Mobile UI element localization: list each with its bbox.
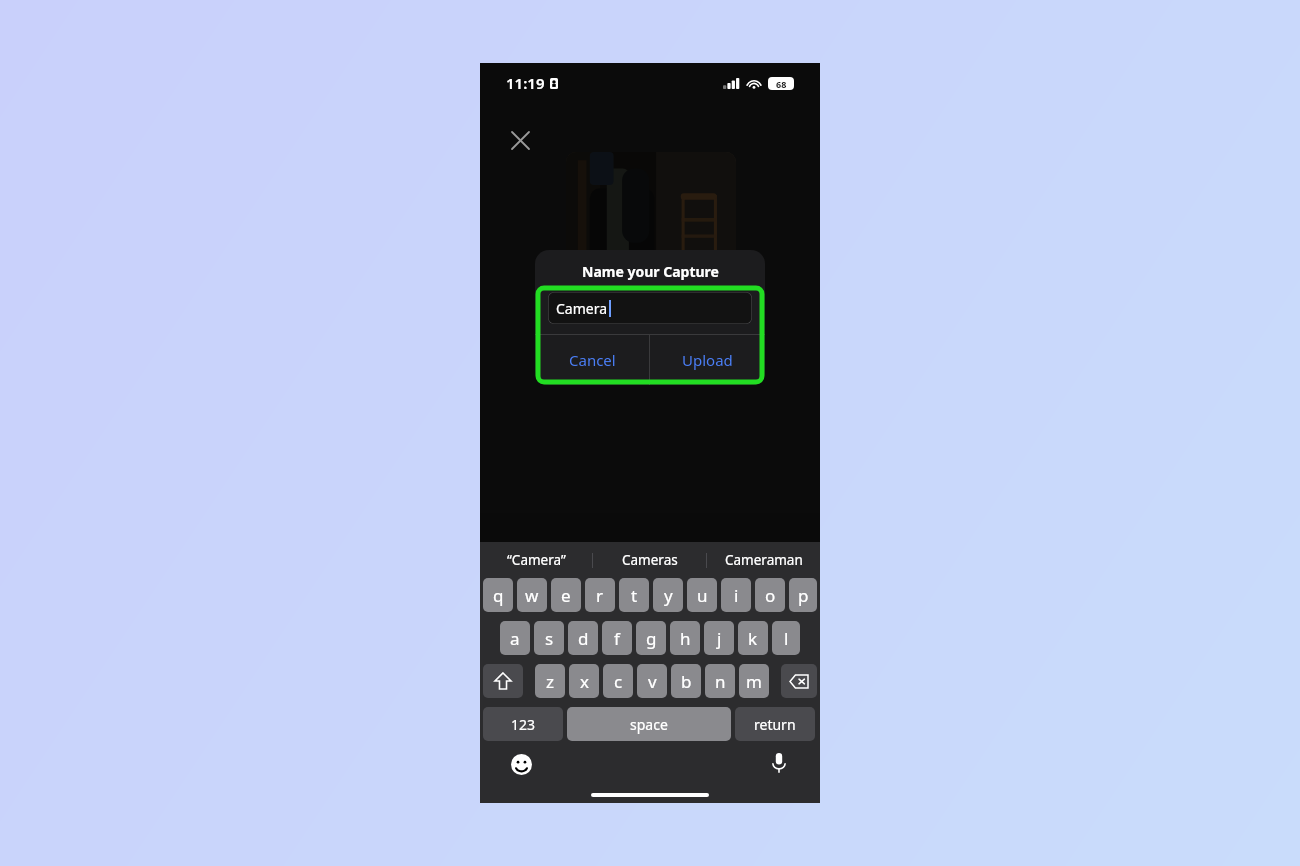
- button[interactable]: x: [569, 664, 599, 698]
- button[interactable]: Dictate: [764, 749, 794, 779]
- button[interactable]: Cameraman: [707, 542, 820, 578]
- button[interactable]: d: [568, 621, 598, 655]
- button[interactable]: Close: [500, 120, 540, 160]
- staticText: 123: [511, 715, 536, 734]
- staticText: l: [784, 627, 789, 650]
- staticText: f: [614, 627, 620, 650]
- staticText: p: [798, 584, 809, 607]
- button[interactable]: m: [739, 664, 769, 698]
- button[interactable]: Shift: [483, 664, 523, 698]
- button[interactable]: Upload: [650, 335, 765, 385]
- button[interactable]: Emoji: [506, 749, 536, 779]
- staticText: c: [614, 670, 623, 693]
- button[interactable]: e: [551, 578, 581, 612]
- staticText: w: [525, 584, 539, 607]
- staticText: Camera: [556, 299, 608, 318]
- staticText: 68: [776, 78, 787, 90]
- staticText: i: [734, 584, 739, 607]
- staticText: r: [596, 584, 604, 607]
- button[interactable]: t: [619, 578, 649, 612]
- button[interactable]: l: [772, 621, 800, 655]
- staticText: z: [546, 670, 554, 693]
- staticText: space: [630, 715, 668, 734]
- button[interactable]: g: [636, 621, 666, 655]
- staticText: h: [680, 627, 691, 650]
- button[interactable]: “Camera”: [480, 542, 592, 578]
- button[interactable]: o: [755, 578, 785, 612]
- staticText: x: [580, 670, 589, 693]
- button[interactable]: space: [567, 707, 731, 741]
- staticText: k: [748, 627, 758, 650]
- staticText: b: [681, 670, 692, 693]
- button[interactable]: q: [483, 578, 513, 612]
- button[interactable]: 123: [483, 707, 563, 741]
- button[interactable]: return: [735, 707, 815, 741]
- button[interactable]: Backspace: [781, 664, 817, 698]
- button[interactable]: j: [704, 621, 734, 655]
- button[interactable]: a: [500, 621, 530, 655]
- staticText: a: [510, 627, 520, 650]
- staticText: Cameras: [622, 551, 678, 569]
- button[interactable]: i: [721, 578, 751, 612]
- staticText: 11:19: [506, 73, 545, 93]
- button[interactable]: k: [738, 621, 768, 655]
- button[interactable]: Cancel: [535, 335, 649, 385]
- button[interactable]: v: [637, 664, 667, 698]
- staticText: j: [717, 627, 722, 650]
- staticText: Cancel: [569, 350, 616, 370]
- button[interactable]: n: [705, 664, 735, 698]
- staticText: u: [697, 584, 708, 607]
- staticText: return: [754, 715, 796, 734]
- staticText: Name your Capture: [582, 262, 719, 281]
- button[interactable]: b: [671, 664, 701, 698]
- staticText: e: [561, 584, 571, 607]
- button[interactable]: Cameras: [593, 542, 706, 578]
- button[interactable]: r: [585, 578, 615, 612]
- staticText: g: [646, 627, 657, 650]
- button[interactable]: h: [670, 621, 700, 655]
- staticText: n: [715, 670, 726, 693]
- button[interactable]: f: [602, 621, 632, 655]
- button[interactable]: y: [653, 578, 683, 612]
- button[interactable]: z: [535, 664, 565, 698]
- staticText: Cameraman: [725, 551, 803, 569]
- button[interactable]: c: [603, 664, 633, 698]
- staticText: y: [664, 584, 673, 607]
- button[interactable]: u: [687, 578, 717, 612]
- staticText: m: [746, 670, 762, 693]
- staticText: s: [545, 627, 554, 650]
- staticText: Upload: [682, 350, 733, 370]
- button[interactable]: Camera: [548, 292, 752, 324]
- button[interactable]: w: [517, 578, 547, 612]
- staticText: “Camera”: [507, 551, 566, 569]
- staticText: o: [765, 584, 776, 607]
- staticText: t: [631, 584, 638, 607]
- staticText: q: [493, 584, 504, 607]
- button[interactable]: p: [789, 578, 817, 612]
- staticText: v: [648, 670, 657, 693]
- staticText: d: [578, 627, 589, 650]
- button[interactable]: s: [534, 621, 564, 655]
